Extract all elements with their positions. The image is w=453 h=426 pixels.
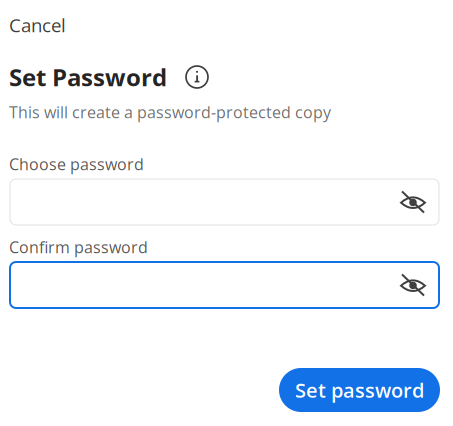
staticText: Set Password <box>9 61 167 93</box>
staticText: Confirm password <box>9 236 148 258</box>
staticText: Set password <box>295 376 424 404</box>
button[interactable]: More information <box>186 66 208 88</box>
button[interactable]: Show password <box>387 180 439 224</box>
staticText: Choose password <box>9 153 144 175</box>
button[interactable]: Set password <box>279 368 440 412</box>
button[interactable]: Cancel <box>9 15 66 35</box>
button[interactable]: Show password <box>387 263 439 307</box>
staticText: Cancel <box>9 12 66 38</box>
staticText: This will create a password-protected co… <box>9 101 331 123</box>
